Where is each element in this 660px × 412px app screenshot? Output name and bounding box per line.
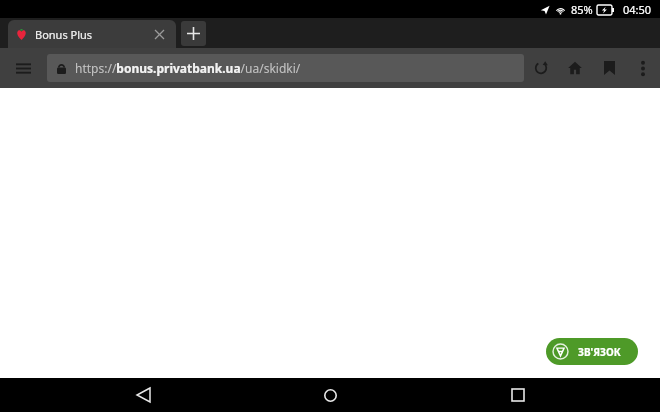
staticText: https://bonus.privatbank.ua/ua/skidki/	[75, 60, 301, 76]
button[interactable]: ЗВ'ЯЗОК	[546, 338, 638, 365]
button[interactable]: New tab	[181, 21, 206, 46]
button[interactable]: Menu	[0, 48, 47, 88]
button[interactable]: Recent apps	[473, 378, 563, 412]
button[interactable]: Home	[285, 378, 375, 412]
button[interactable]: Bookmark	[592, 48, 626, 88]
button[interactable]: Close tab	[150, 25, 168, 43]
staticText: ЗВ'ЯЗОК	[578, 345, 621, 359]
button[interactable]: https://bonus.privatbank.ua/ua/skidki/	[47, 54, 524, 82]
staticText: Bonus Plus	[35, 27, 93, 42]
staticText: 85%	[571, 2, 593, 17]
button[interactable]: More options	[626, 48, 660, 88]
button[interactable]: Bonus Plus	[8, 20, 176, 48]
button[interactable]: Back	[98, 378, 188, 412]
button[interactable]: Home	[558, 48, 592, 88]
staticText: 04:50	[623, 2, 652, 17]
button[interactable]: Reload	[524, 48, 558, 88]
